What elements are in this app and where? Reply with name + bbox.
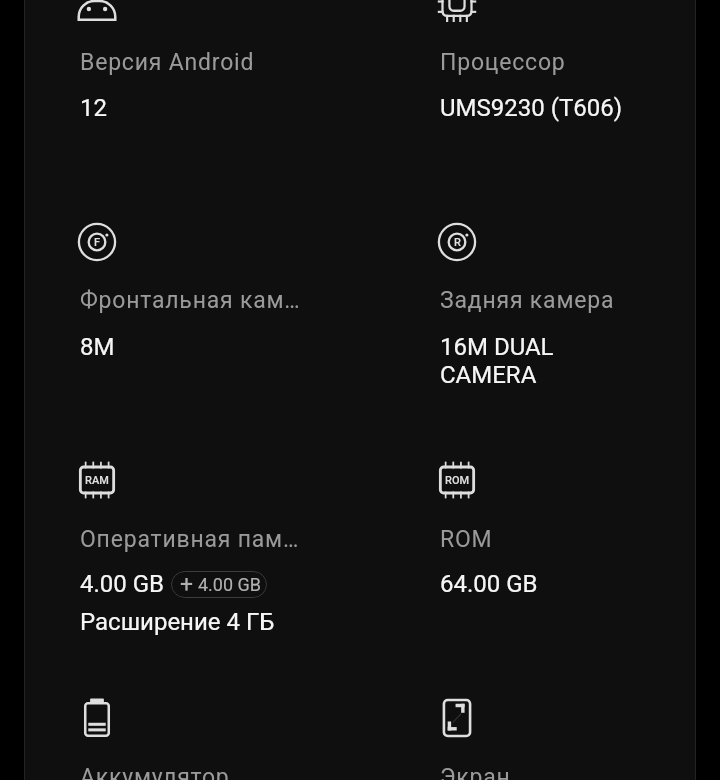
button[interactable]: Версия Android [76, 0, 118, 23]
staticText: Версия Android [80, 49, 255, 76]
button[interactable]: Процессор [436, 0, 478, 23]
staticText: 8M [80, 333, 115, 361]
staticText: Задняя камера [440, 287, 615, 314]
button[interactable]: Задняя камера 16M DUAL CAMERA [360, 215, 695, 360]
staticText: + [180, 571, 194, 598]
button[interactable]: Процессор UMS9230 (T606) [360, 0, 695, 120]
button[interactable]: Аккумулятор [76, 697, 118, 739]
button[interactable]: Фронтальная камера [76, 221, 118, 263]
button[interactable]: Фронтальная камера 8M [25, 215, 360, 360]
staticText: Оперативная память [80, 526, 302, 553]
staticText: ROM [445, 474, 470, 487]
staticText: Фронтальная камера [80, 287, 302, 314]
staticText: Процессор [440, 49, 566, 76]
button[interactable]: Версия Android 12 [25, 0, 360, 120]
staticText: Аккумулятор [80, 764, 230, 780]
staticText: Экран [440, 764, 511, 780]
button[interactable]: Экран [360, 690, 695, 780]
button[interactable]: Задняя камера [436, 221, 478, 263]
staticText: 4.00 GB [198, 574, 262, 595]
staticText: Расширение 4 ГБ [80, 608, 275, 636]
staticText: 4.00 GB [80, 570, 165, 598]
button[interactable]: Аккумулятор [25, 690, 360, 780]
staticText: RAM [85, 474, 109, 487]
staticText: UMS9230 (T606) [440, 94, 623, 122]
staticText: 12 [80, 94, 107, 122]
staticText: 64.00 GB [440, 570, 538, 598]
staticText: R [454, 236, 461, 249]
button[interactable]: + [171, 571, 267, 598]
staticText: ROM [440, 526, 493, 553]
button[interactable]: ROM 64.00 GB [360, 455, 695, 640]
staticText: F [94, 236, 101, 249]
button[interactable]: Оперативная память [76, 459, 118, 501]
button[interactable]: Экран [436, 697, 478, 739]
button[interactable]: ROM [436, 459, 478, 501]
staticText: 16M DUAL CAMERA [440, 333, 554, 389]
button[interactable]: Оперативная память 4.00 GB [25, 455, 360, 640]
